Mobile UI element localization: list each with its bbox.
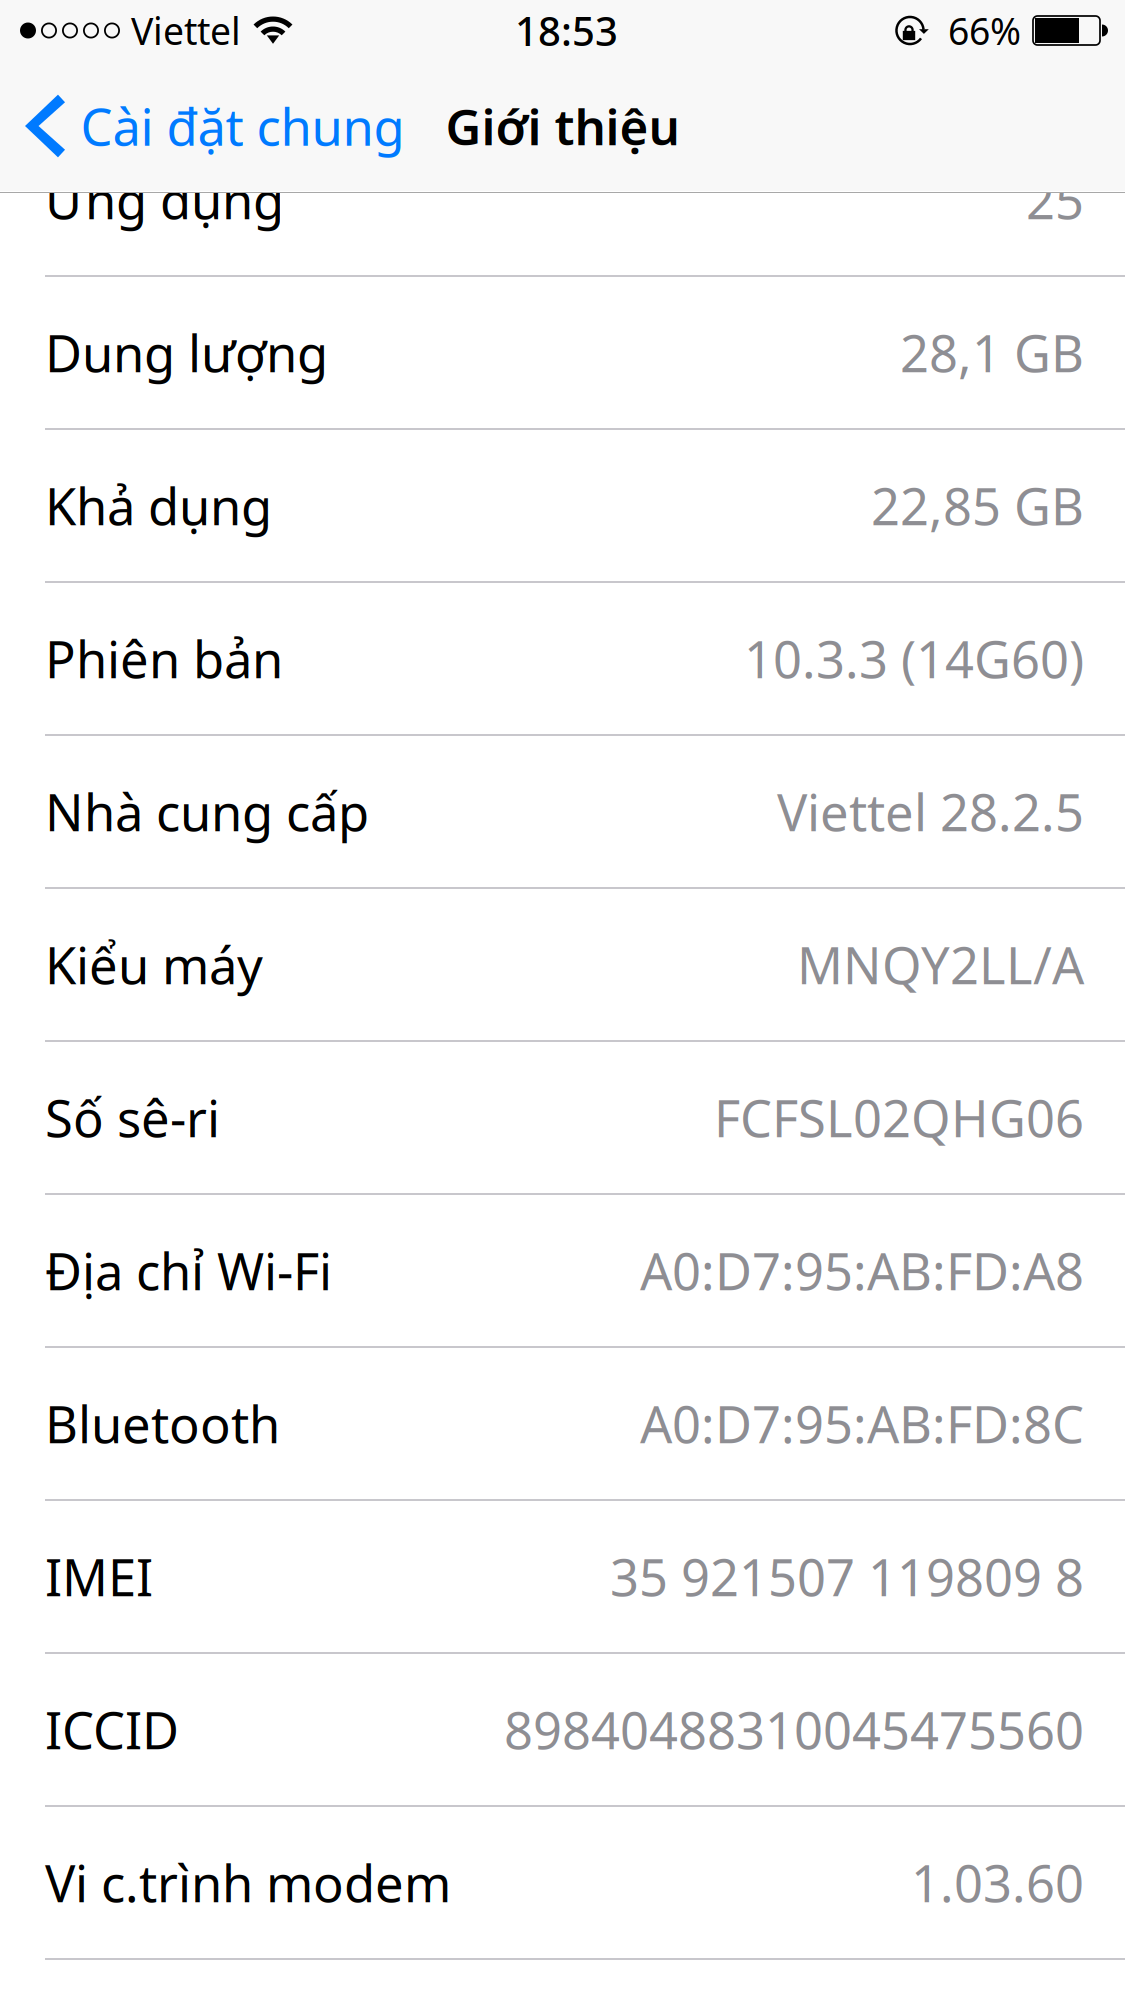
- staticText: Viettel 28.2.5: [777, 778, 1084, 845]
- staticText: 28,1 GB: [900, 319, 1084, 386]
- staticText: Bluetooth: [45, 1390, 280, 1457]
- staticText: 89840488310045475560: [504, 1696, 1084, 1763]
- staticText: Vi c.trình modem: [45, 1849, 451, 1916]
- staticText: IMEI: [45, 1543, 153, 1610]
- button[interactable]: Bluetooth: [0, 1348, 1125, 1501]
- staticText: 35 921507 119809 8: [610, 1543, 1084, 1610]
- staticText: Kiểu máy: [45, 931, 263, 998]
- button[interactable]: Kiểu máy: [0, 889, 1125, 1042]
- button[interactable]: Ứng dụng: [0, 124, 1125, 277]
- staticText: Giới thiệu: [445, 93, 679, 159]
- staticText: 25: [1026, 166, 1084, 233]
- staticText: Nhà cung cấp: [45, 778, 369, 845]
- staticText: FCFSL02QHG06: [714, 1084, 1084, 1151]
- staticText: 66%: [948, 6, 1021, 55]
- staticText: 18:53: [515, 4, 618, 57]
- button[interactable]: ICCID: [0, 1654, 1125, 1807]
- button[interactable]: Dung lượng: [0, 277, 1125, 430]
- staticText: MNQY2LL/A: [797, 931, 1084, 998]
- button[interactable]: Phiên bản: [0, 583, 1125, 736]
- staticText: Địa chỉ Wi-Fi: [45, 1237, 332, 1304]
- button[interactable]: Vi c.trình modem: [0, 1807, 1125, 1960]
- staticText: 22,85 GB: [871, 472, 1084, 539]
- staticText: Ứng dụng: [45, 166, 284, 233]
- staticText: 1.03.60: [911, 1849, 1084, 1916]
- staticText: 10.3.3 (14G60): [744, 625, 1084, 692]
- staticText: A0:D7:95:AB:FD:8C: [640, 1390, 1084, 1457]
- staticText: Dung lượng: [45, 319, 328, 386]
- button[interactable]: Số sê-ri: [0, 1042, 1125, 1195]
- button[interactable]: Back to Cài đặt chung: [0, 61, 424, 191]
- button[interactable]: Nhà cung cấp: [0, 736, 1125, 889]
- button[interactable]: Địa chỉ Wi-Fi: [0, 1195, 1125, 1348]
- staticText: Số sê-ri: [45, 1084, 220, 1151]
- staticText: Viettel: [131, 6, 241, 55]
- staticText: Cài đặt chung: [80, 92, 404, 160]
- staticText: A0:D7:95:AB:FD:A8: [640, 1237, 1084, 1304]
- button[interactable]: IMEI: [0, 1501, 1125, 1654]
- staticText: Khả dụng: [45, 472, 272, 539]
- staticText: Phiên bản: [45, 625, 283, 692]
- button[interactable]: Khả dụng: [0, 430, 1125, 583]
- staticText: ICCID: [45, 1696, 179, 1763]
